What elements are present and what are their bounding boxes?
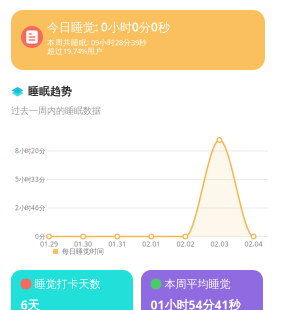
staticText: 01小时54分41秒 <box>150 297 240 310</box>
staticText: 02.04 <box>245 239 263 248</box>
staticText: 本周共睡眠: 09小时28分39秒 <box>47 37 147 47</box>
button[interactable]: 今日睡觉: 0小时0分0秒 <box>11 10 265 70</box>
button[interactable]: 睡觉打卡天数 <box>11 270 133 310</box>
staticText: 2小时46分 <box>15 203 45 212</box>
staticText: 睡觉打卡天数 <box>34 277 100 291</box>
staticText: 01.31 <box>108 239 126 248</box>
staticText: 本周平均睡觉 <box>164 277 230 291</box>
staticText: 01.29 <box>40 239 58 248</box>
button[interactable]: 本周平均睡觉 <box>141 270 263 310</box>
staticText: 5小时33分 <box>15 175 45 184</box>
staticText: 8小时20分 <box>15 146 45 155</box>
staticText: 6天 <box>20 297 39 310</box>
staticText: 02.01 <box>142 239 160 248</box>
staticText: 01.30 <box>74 239 92 248</box>
staticText: 02.02 <box>176 239 194 248</box>
staticText: 今日睡觉: 0小时0分0秒 <box>47 19 170 35</box>
staticText: 过去一周内的睡眠数据 <box>11 105 101 116</box>
staticText: 睡眠趋势 <box>28 85 72 98</box>
staticText: 0分 <box>35 232 45 241</box>
staticText: 02.03 <box>210 239 228 248</box>
staticText: 超过19.74%用户 <box>47 45 103 56</box>
staticText: 每日睡觉时间 <box>62 247 104 256</box>
